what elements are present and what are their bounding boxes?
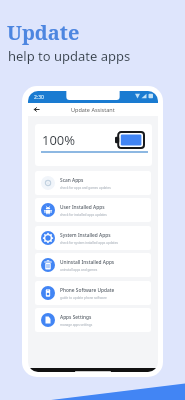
staticText: check for installed apps updates <box>60 213 107 217</box>
staticText: Update Assistant <box>71 106 115 113</box>
staticText: check for system installed apps updates <box>60 241 118 245</box>
staticText: Uninstall Installed Apps <box>60 259 115 266</box>
staticText: 2:30 <box>34 94 44 101</box>
staticText: Update <box>7 19 80 46</box>
button[interactable]: Apps Settings <box>35 308 151 332</box>
staticText: Phone Software Update <box>60 287 115 294</box>
staticText: Scan Apps <box>60 177 84 184</box>
staticText: System Installed Apps <box>60 232 111 239</box>
button[interactable]: System Installed Apps <box>35 226 151 250</box>
staticText: help to update apps <box>8 47 131 65</box>
staticText: User Installed Apps <box>60 204 105 211</box>
staticText: uninstall apps and games <box>60 268 98 272</box>
staticText: 100% <box>42 131 76 149</box>
button[interactable]: Uninstall Installed Apps <box>35 253 151 277</box>
staticText: guide to update phone software <box>60 296 107 300</box>
button[interactable]: User Installed Apps <box>35 198 151 222</box>
button[interactable]: Phone Software Update <box>35 281 151 305</box>
staticText: check for apps and games updates <box>60 186 111 190</box>
staticText: manage apps settings <box>60 323 93 327</box>
button[interactable]: Scan Apps <box>35 171 151 195</box>
staticText: Apps Settings <box>60 314 92 321</box>
button[interactable]: Back <box>33 106 40 113</box>
